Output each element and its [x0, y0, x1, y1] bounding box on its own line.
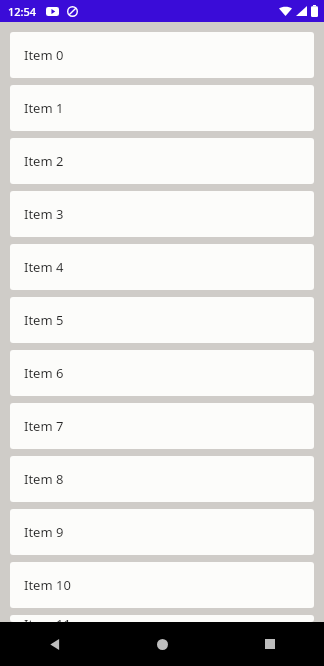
button[interactable]: Item 8: [10, 456, 314, 502]
staticText: Item 6: [24, 364, 64, 382]
button[interactable]: Recent apps: [216, 622, 324, 666]
staticText: Item 10: [24, 576, 71, 594]
button[interactable]: Item 0: [10, 32, 314, 78]
staticText: Item 5: [24, 311, 64, 329]
button[interactable]: Item 4: [10, 244, 314, 290]
staticText: Item 7: [24, 417, 64, 435]
button[interactable]: Back: [0, 622, 108, 666]
button[interactable]: Item 5: [10, 297, 314, 343]
button[interactable]: Item 9: [10, 509, 314, 555]
staticText: Item 8: [24, 470, 64, 488]
staticText: 12:54: [8, 4, 37, 19]
staticText: Item 3: [24, 205, 64, 223]
button[interactable]: Item 6: [10, 350, 314, 396]
button[interactable]: Item 10: [10, 562, 314, 608]
button[interactable]: Item 1: [10, 85, 314, 131]
button[interactable]: Item 11: [10, 615, 314, 622]
button[interactable]: Home: [108, 622, 216, 666]
staticText: Item 9: [24, 523, 64, 541]
staticText: Item 11: [24, 615, 71, 622]
staticText: Item 1: [24, 99, 64, 117]
staticText: Item 0: [24, 46, 64, 64]
button[interactable]: Item 7: [10, 403, 314, 449]
button[interactable]: Item 3: [10, 191, 314, 237]
staticText: Item 2: [24, 152, 64, 170]
button[interactable]: Item 2: [10, 138, 314, 184]
staticText: Item 4: [24, 258, 64, 276]
